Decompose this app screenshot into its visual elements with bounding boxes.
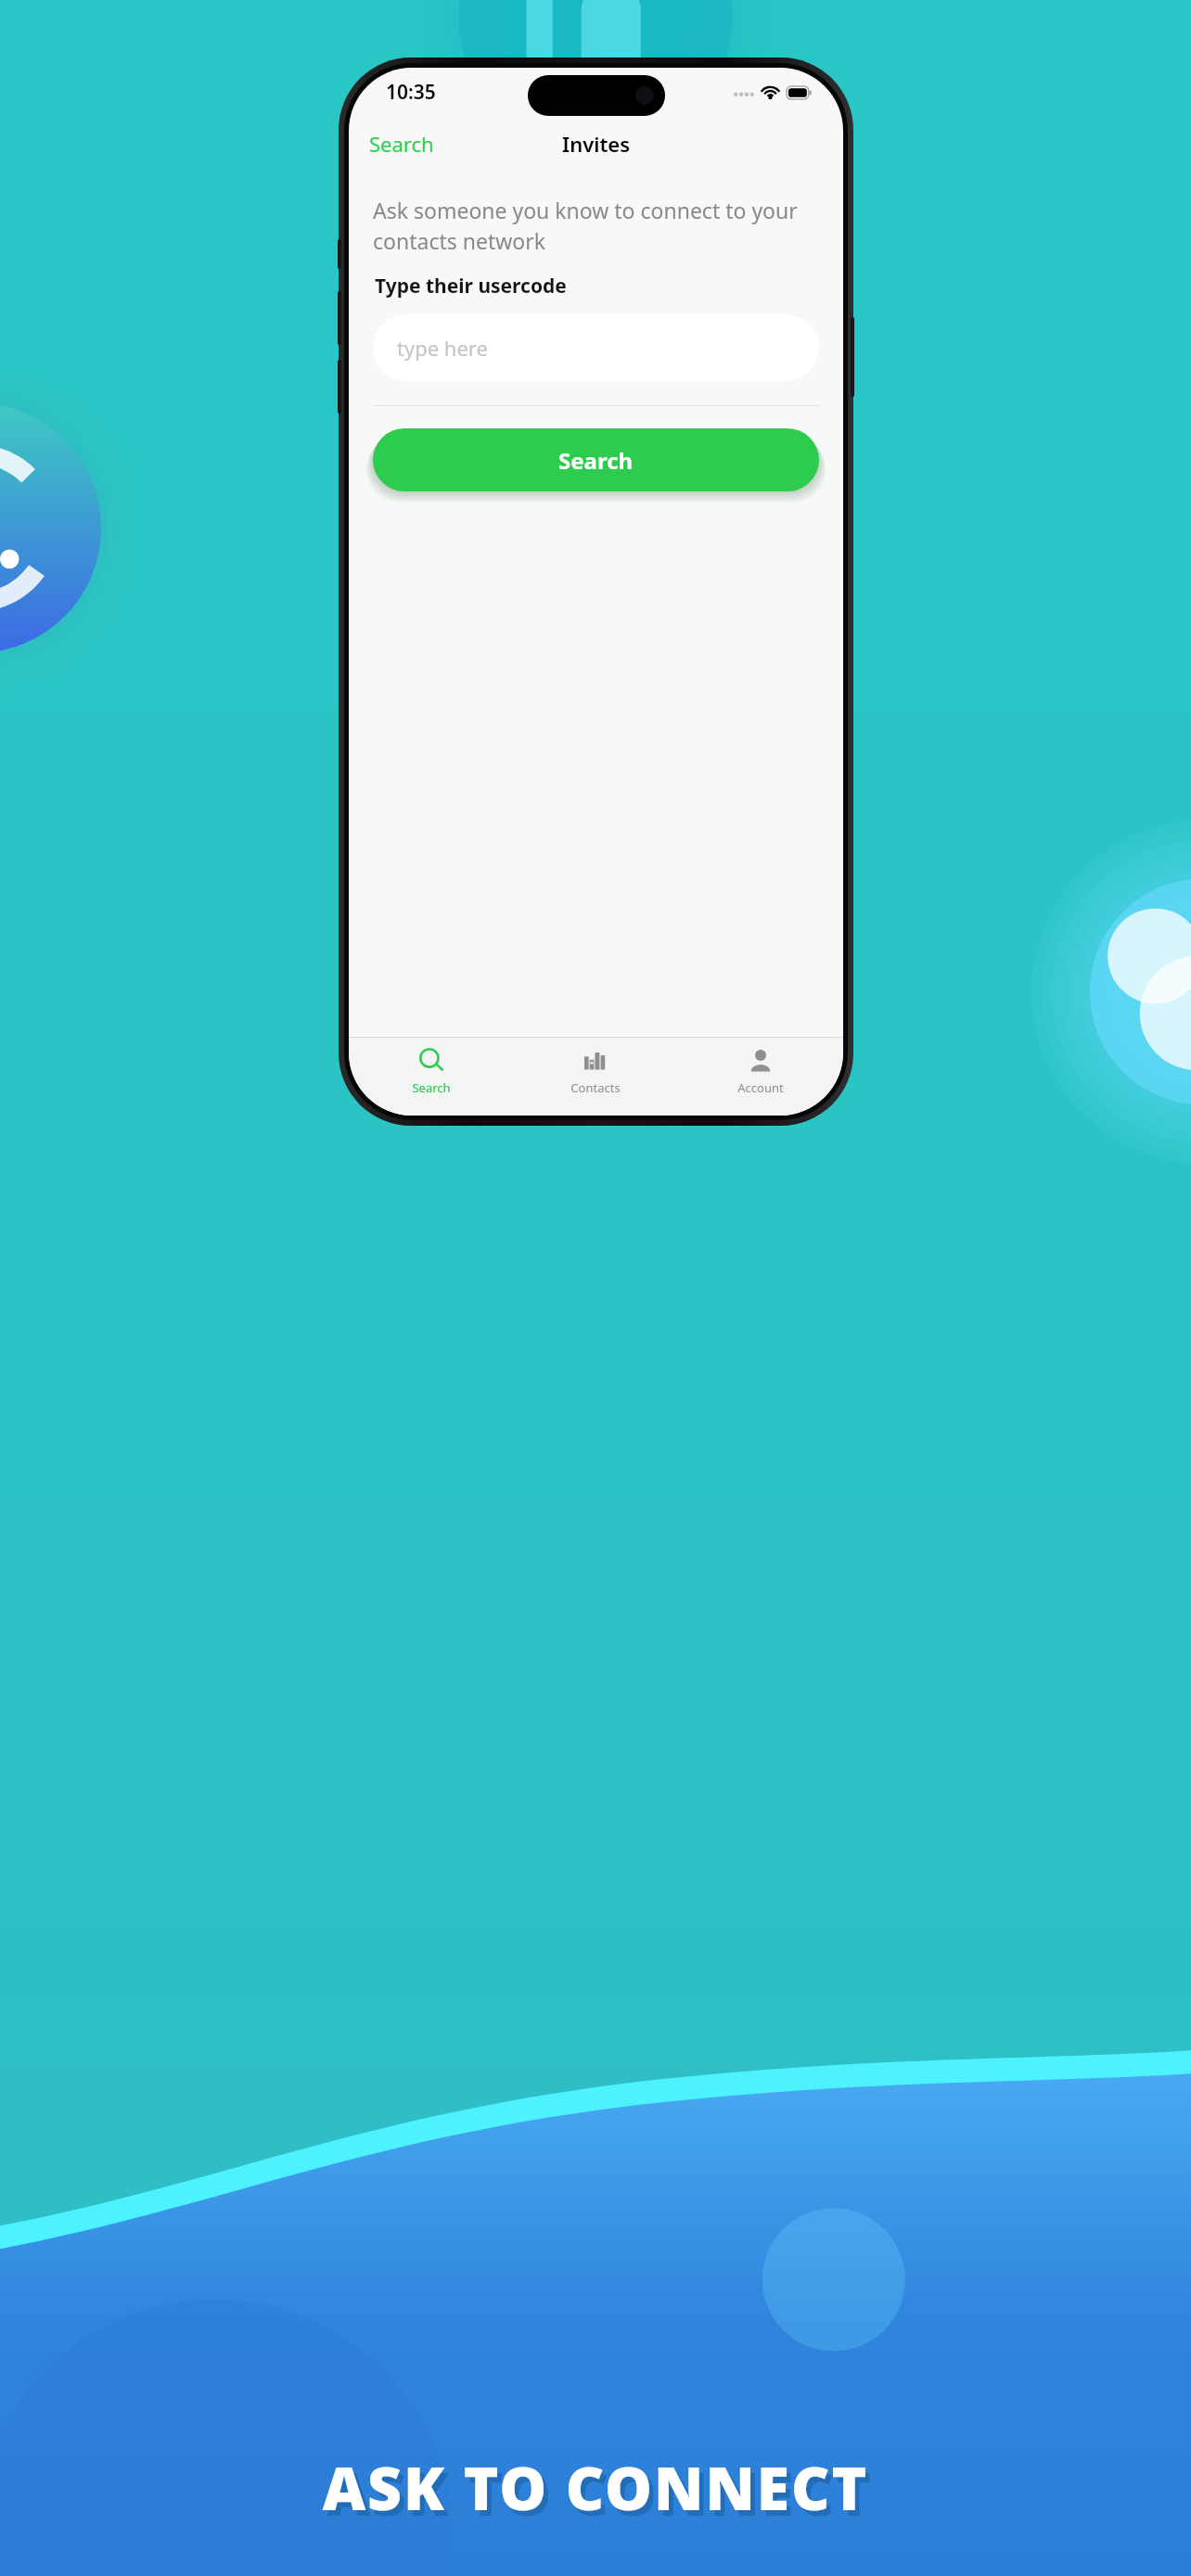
staticText: 10:35 xyxy=(386,79,436,106)
staticText: Invites xyxy=(562,130,631,158)
staticText: Search xyxy=(412,1079,451,1096)
button[interactable]: Account xyxy=(678,1038,843,1096)
button[interactable]: Search xyxy=(349,1038,513,1096)
button[interactable]: Contacts xyxy=(513,1038,678,1096)
staticText: type here xyxy=(397,334,488,362)
button[interactable]: Search xyxy=(349,124,447,163)
staticText: Contacts xyxy=(570,1079,621,1096)
staticText: Account xyxy=(737,1079,784,1096)
staticText: Search xyxy=(369,130,434,158)
staticText: ASK TO CONNECT xyxy=(5,2453,1191,2533)
staticText: Ask someone you know to connect to your … xyxy=(373,196,819,256)
button[interactable]: type here xyxy=(373,314,819,381)
staticText: Search xyxy=(558,445,634,476)
staticText: Type their usercode xyxy=(375,273,567,300)
staticText: ASK TO CONNECT xyxy=(0,2447,1191,2528)
button[interactable]: Search xyxy=(373,428,819,491)
